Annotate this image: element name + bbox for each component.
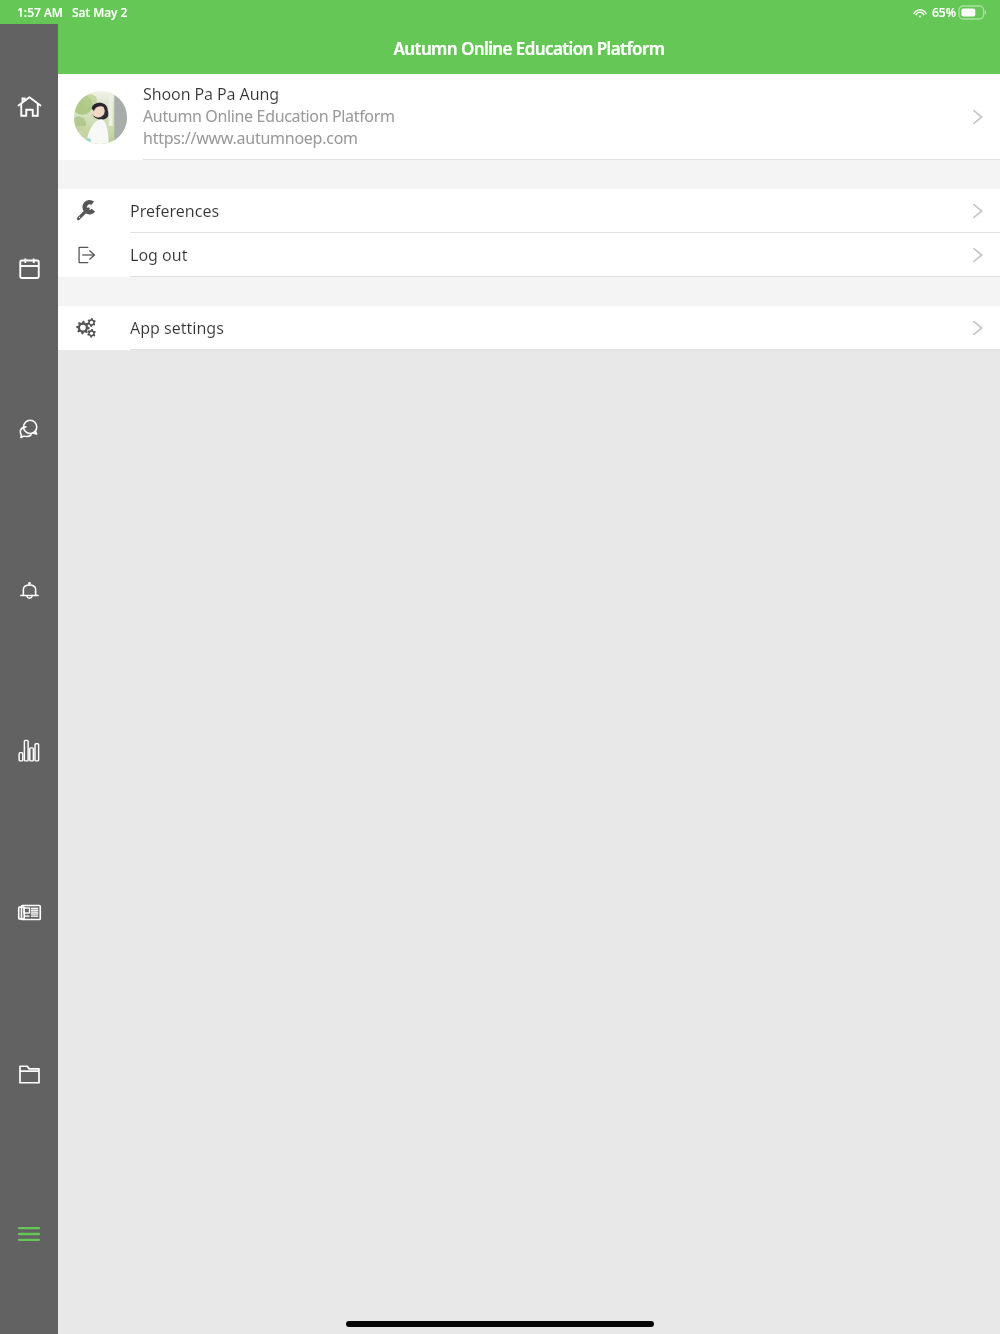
button[interactable]: Menu (0, 1211, 58, 1257)
staticText: 65% (932, 4, 956, 20)
button[interactable]: App settings (58, 306, 1000, 350)
button[interactable]: Home (0, 83, 58, 129)
button[interactable]: News (0, 889, 58, 935)
staticText: 1:57 AM (17, 4, 63, 20)
button[interactable]: Preferences (58, 189, 1000, 233)
staticText: Sat May 2 (72, 4, 128, 20)
button[interactable]: Calendar (0, 245, 58, 291)
staticText: Log out (130, 244, 188, 266)
staticText: Autumn Online Education Platform (143, 105, 395, 127)
button[interactable]: Shoon Pa Pa Aung (58, 74, 1000, 160)
button[interactable]: Log out (58, 233, 1000, 277)
button[interactable]: Files (0, 1051, 58, 1097)
button[interactable]: Notifications (0, 567, 58, 613)
button[interactable]: Reports (0, 728, 58, 774)
staticText: App settings (130, 317, 224, 339)
staticText: Autumn Online Education Platform (29, 37, 1000, 60)
staticText: https://www.autumnoep.com (143, 127, 358, 149)
button[interactable]: Messages (0, 406, 58, 452)
staticText: Shoon Pa Pa Aung (143, 83, 279, 105)
staticText: Preferences (130, 200, 220, 222)
